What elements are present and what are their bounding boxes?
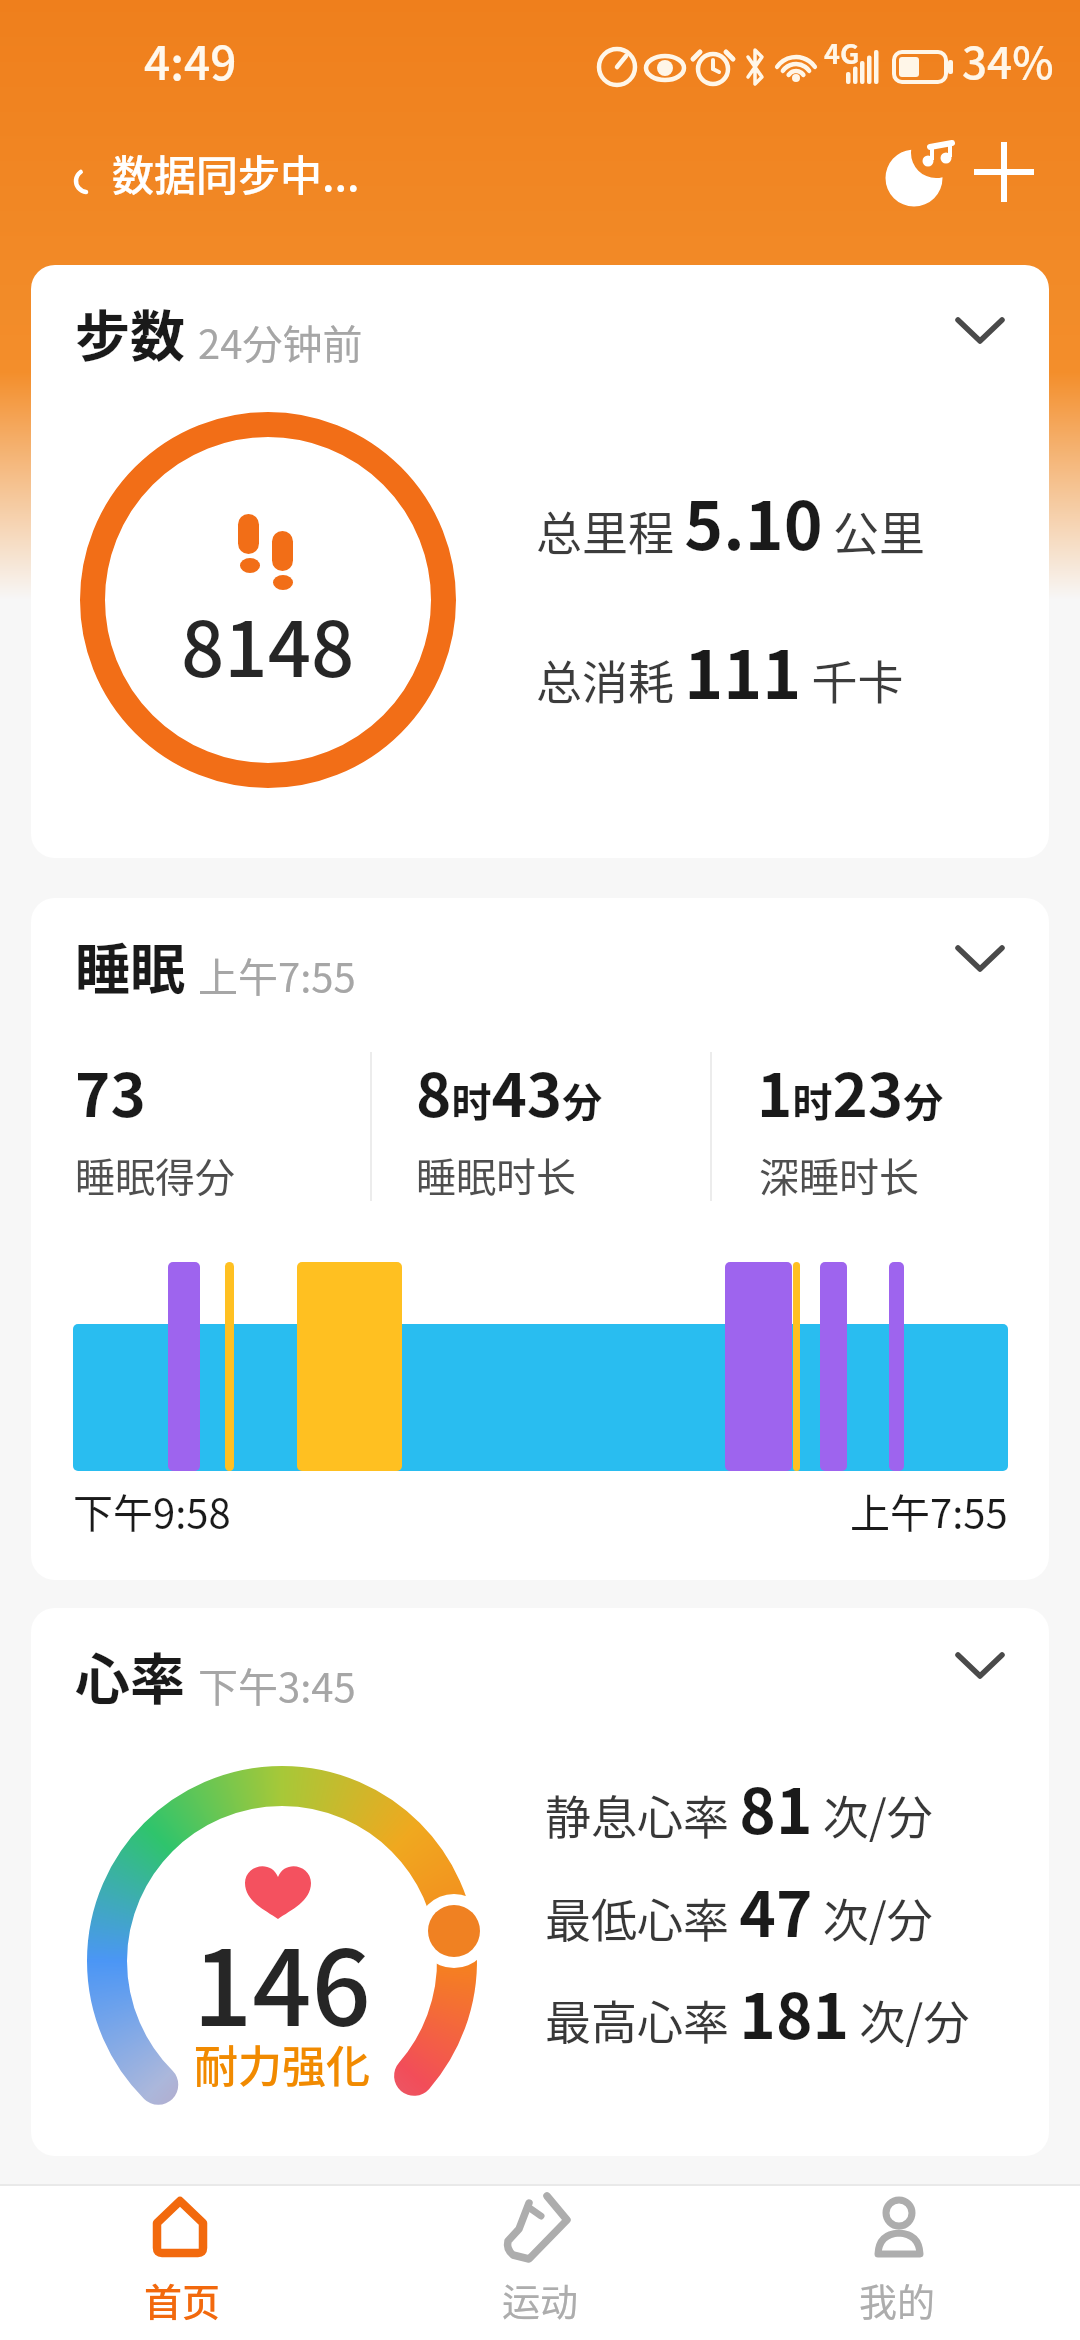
button[interactable]: [92, 2186, 272, 2340]
staticText: 耐力强化: [194, 2032, 370, 2084]
staticText: 深睡时长: [759, 1146, 919, 1196]
button[interactable]: 睡眠: [31, 898, 1049, 1580]
staticText: 最高心率 181 次/分: [545, 1967, 970, 2043]
staticText: 睡眠时长: [416, 1146, 576, 1196]
staticText: 8148: [181, 589, 355, 665]
staticText: 最低心率 47 次/分: [545, 1865, 933, 1941]
staticText: 4G: [824, 33, 860, 67]
button[interactable]: 步数: [31, 265, 1049, 858]
button[interactable]: [972, 140, 1036, 204]
staticText: 上午7:55: [198, 946, 356, 996]
staticText: 1时23分: [757, 1047, 944, 1119]
staticText: 34%: [962, 28, 1054, 84]
staticText: 总里程 5.10 公里: [536, 473, 925, 549]
staticText: 首页: [144, 2272, 221, 2326]
staticText: 静息心率 81 次/分: [545, 1762, 933, 1838]
staticText: 步数: [75, 292, 186, 354]
button[interactable]: [450, 2186, 630, 2340]
button[interactable]: 心率: [31, 1608, 1049, 2156]
staticText: 我的: [859, 2272, 936, 2326]
staticText: 73: [75, 1047, 146, 1119]
button[interactable]: [884, 136, 958, 210]
button[interactable]: [807, 2186, 987, 2340]
staticText: 心率: [75, 1635, 186, 1697]
staticText: 总消耗 111 千卡: [536, 622, 904, 698]
staticText: 数据同步中...: [112, 142, 360, 198]
staticText: 上午7:55: [850, 1482, 1008, 1532]
staticText: 睡眠得分: [75, 1146, 235, 1196]
staticText: 睡眠: [75, 925, 186, 987]
staticText: 运动: [502, 2272, 579, 2326]
staticText: 146: [193, 1905, 371, 2000]
staticText: 4:49: [144, 27, 237, 83]
staticText: 下午9:58: [73, 1482, 231, 1532]
staticText: 24分钟前: [198, 313, 363, 363]
staticText: 8时43分: [416, 1047, 603, 1119]
staticText: 下午3:45: [198, 1656, 356, 1706]
